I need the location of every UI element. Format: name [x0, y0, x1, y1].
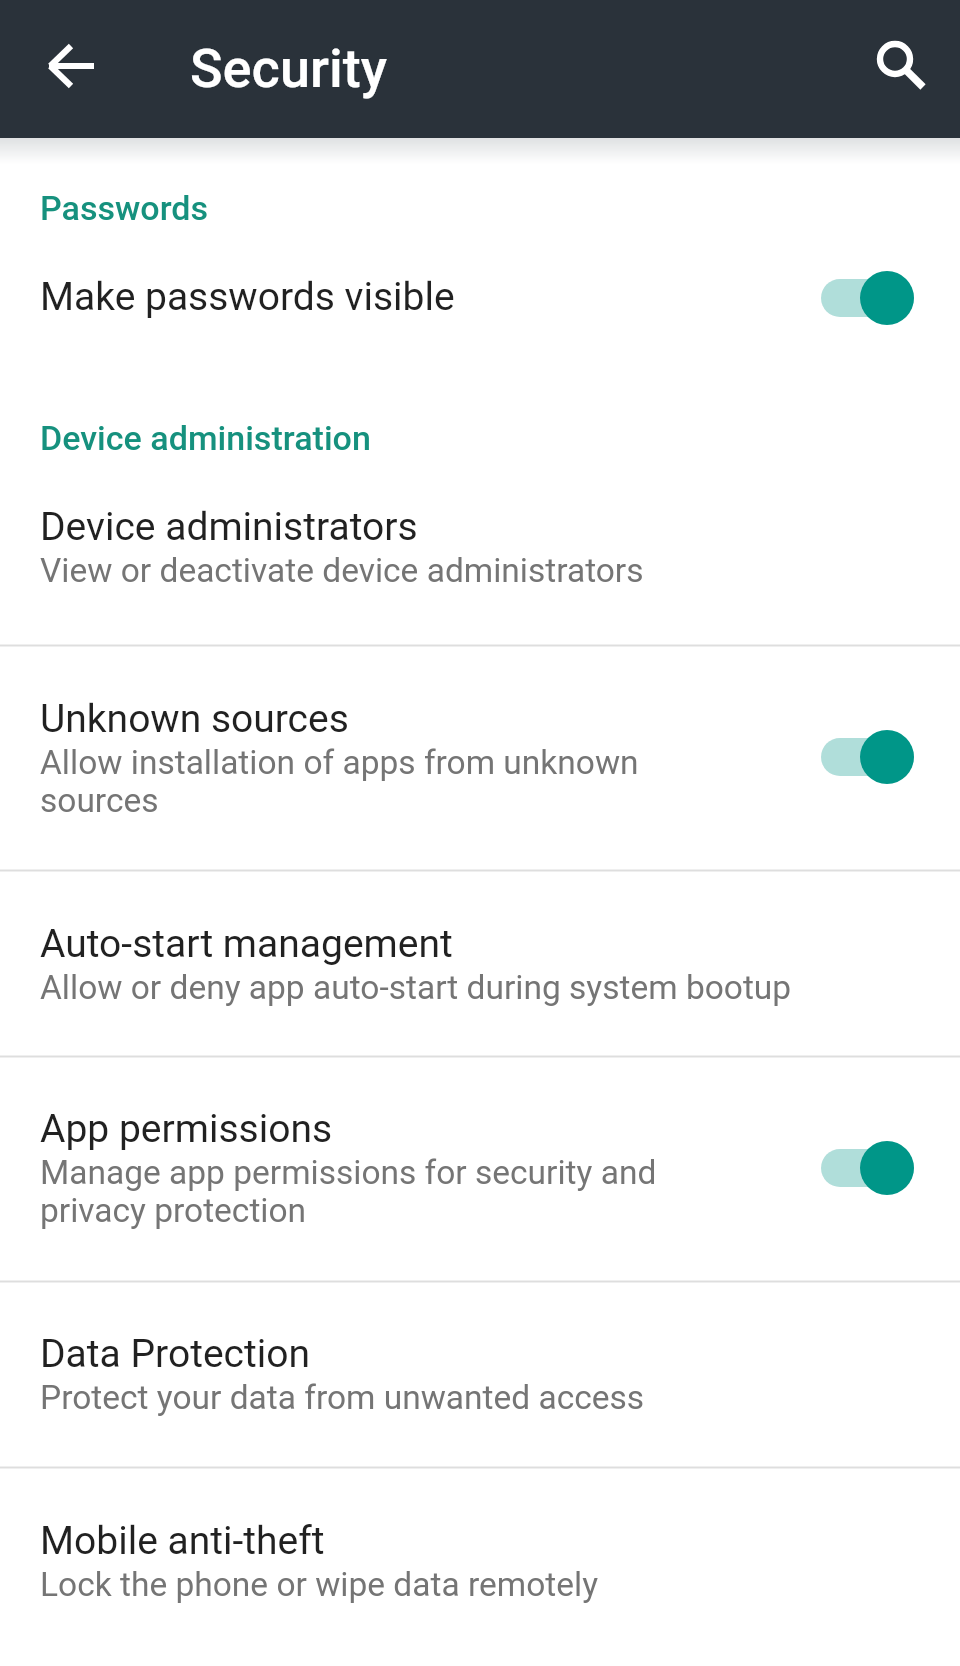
button[interactable]: Search — [846, 17, 946, 117]
staticText: View or deactivate device administrators — [40, 551, 840, 590]
staticText: Passwords — [40, 188, 209, 228]
staticText: Make passwords visible — [40, 274, 740, 320]
button[interactable]: Unknown sources — [0, 646, 960, 870]
button[interactable]: Mobile anti-theft — [0, 1468, 960, 1666]
staticText: Allow installation of apps from unknown … — [40, 743, 700, 820]
button[interactable]: App permissions — [0, 1057, 960, 1281]
staticText: Auto-start management — [40, 921, 860, 967]
staticText: Lock the phone or wipe data remotely — [40, 1565, 860, 1604]
staticText: Allow or deny app auto-start during syst… — [40, 968, 860, 1007]
staticText: Device administrators — [40, 504, 840, 550]
button[interactable]: Auto-start management — [0, 871, 960, 1056]
button[interactable]: Device administrators — [0, 470, 960, 645]
button[interactable]: Make passwords visible — [0, 243, 960, 394]
button[interactable]: Toggle Make passwords visible — [806, 263, 930, 333]
staticText: Unknown sources — [40, 696, 700, 742]
staticText: Manage app permissions for security and … — [40, 1153, 700, 1230]
button[interactable]: Toggle Unknown sources — [806, 722, 930, 792]
staticText: Protect your data from unwanted access — [40, 1378, 860, 1417]
staticText: Mobile anti-theft — [40, 1518, 860, 1564]
staticText: Data Protection — [40, 1331, 860, 1377]
staticText: Device administration — [40, 418, 371, 458]
button[interactable]: Back — [22, 21, 118, 117]
button[interactable]: Data Protection — [0, 1282, 960, 1467]
staticText: Security — [190, 37, 387, 100]
staticText: App permissions — [40, 1106, 700, 1152]
button[interactable]: Toggle App permissions — [806, 1133, 930, 1203]
